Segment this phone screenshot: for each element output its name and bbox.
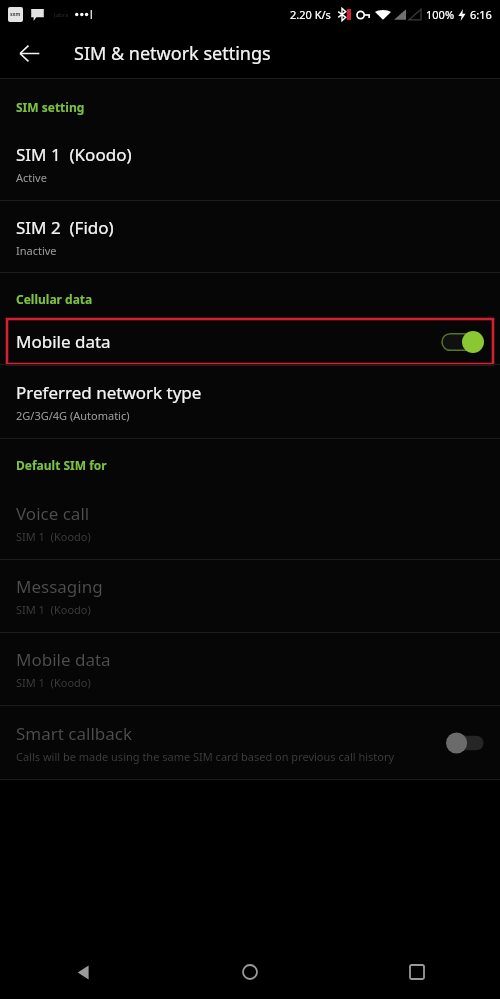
staticText: Voice call [16,502,90,525]
staticText: Messaging [16,575,103,598]
button[interactable]: Preferred network type [0,365,500,438]
button[interactable]: SIM 1 (Koodo) [0,128,500,200]
button[interactable]: Navigate up [11,35,47,71]
staticText: 2.20 K/s [290,7,331,22]
staticText: Inactive [16,243,57,258]
button[interactable]: Mobile data [0,319,500,364]
staticText: SIM 1 (Koodo) [16,529,91,544]
button[interactable]: SIM 2 (Fido) [0,201,500,272]
staticText: SIM 2 (Fido) [16,216,114,239]
staticText: SIM 1 (Koodo) [16,675,91,690]
button[interactable]: Recent apps [333,945,500,999]
staticText: SIM & network settings [74,41,271,66]
button[interactable]: Messaging [0,560,500,632]
staticText: 100% [426,7,455,22]
staticText: Cellular data [16,291,93,307]
staticText: Preferred network type [16,381,202,404]
button[interactable]: Voice call [0,486,500,559]
staticText: SIM 1 (Koodo) [16,143,132,166]
staticText: Mobile data [16,648,111,671]
staticText: Jabra [54,11,69,19]
staticText: 2G/3G/4G (Automatic) [16,408,130,423]
button[interactable]: Back [0,945,166,999]
staticText: Active [16,170,47,185]
button[interactable]: Mobile data [0,633,500,705]
staticText: SIM setting [16,99,85,115]
staticText: sxm [10,11,21,18]
button[interactable]: Smart callback [0,706,500,779]
staticText: Smart callback [16,722,133,745]
button[interactable]: Smart callback, off [446,732,484,754]
staticText: SIM 1 (Koodo) [16,602,91,617]
staticText: Calls will be made using the same SIM ca… [16,749,395,764]
button[interactable]: Home [166,945,333,999]
staticText: 6:16 [470,7,492,22]
button[interactable]: Mobile data, on [442,331,484,353]
staticText: Mobile data [16,330,442,353]
staticText: Default SIM for [16,457,107,473]
